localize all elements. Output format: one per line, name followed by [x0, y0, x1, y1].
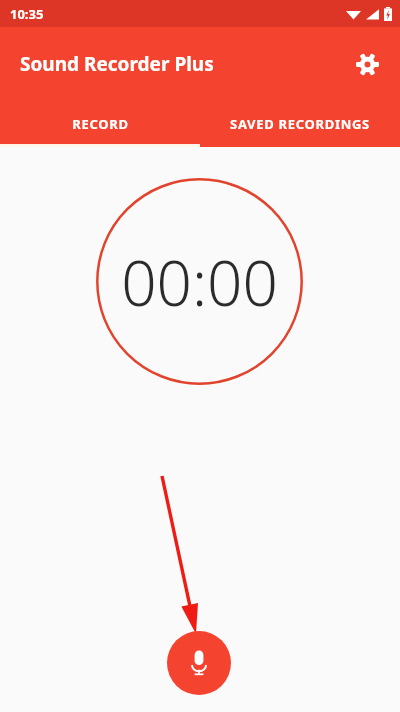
button[interactable]: SAVED RECORDINGS — [200, 100, 400, 147]
button[interactable]: RECORD — [0, 100, 200, 147]
button[interactable]: Record — [167, 631, 231, 695]
staticText: 10:35 — [10, 5, 44, 23]
staticText: Sound Recorder Plus — [20, 51, 214, 77]
staticText: 00:00 — [121, 240, 278, 324]
staticText: RECORD — [72, 115, 129, 133]
staticText: SAVED RECORDINGS — [230, 115, 370, 133]
button[interactable]: Settings — [345, 42, 389, 86]
